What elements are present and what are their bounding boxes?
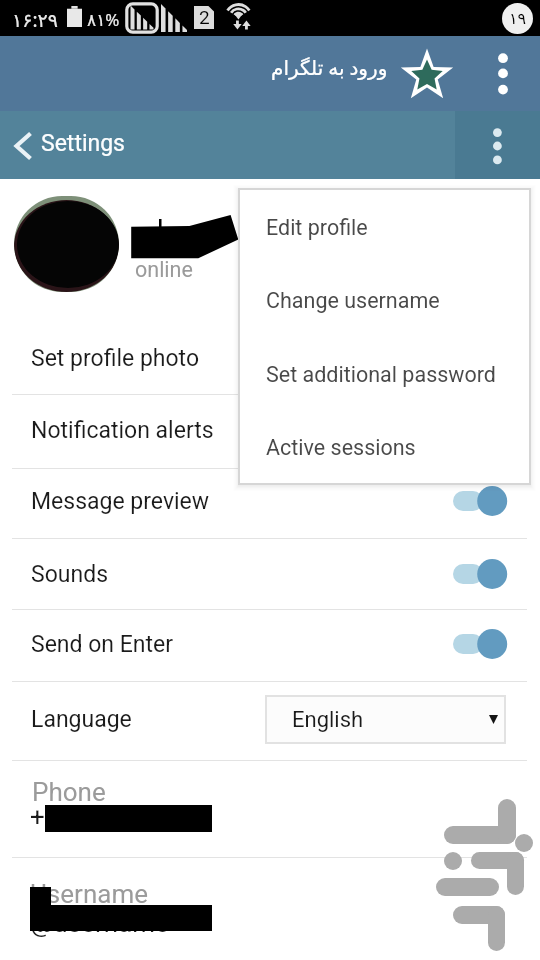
button[interactable]: Toggle [445,481,511,521]
staticText: online [135,257,193,282]
button[interactable]: Notification alerts [0,395,540,466]
staticText: 2 [199,6,210,28]
button[interactable]: Username [0,858,540,958]
staticText: Language [31,706,132,733]
button[interactable]: Settings [0,111,250,179]
button[interactable]: Language [0,684,540,755]
button[interactable]: Sounds [0,539,540,610]
button[interactable]: Set profile photo [0,323,540,394]
staticText: @username [30,908,169,938]
button[interactable]: More options [481,44,525,104]
button[interactable]: English [266,696,505,743]
button[interactable] [14,196,119,292]
button[interactable]: More options [455,111,540,179]
staticText: Set additional password [266,362,496,387]
button[interactable]: Message preview [0,466,540,537]
button[interactable]: Edit profile [239,191,530,264]
button[interactable]: Active sessions [239,411,530,484]
staticText: Set profile photo [31,345,200,372]
staticText: Message preview [31,488,210,515]
button[interactable]: Favorite [398,47,456,103]
staticText: Notification alerts [31,417,214,444]
staticText: ۸۱% [87,8,120,31]
staticText: ۱۶:۲۹ [12,7,58,33]
staticText: Active sessions [266,435,416,460]
staticText: Settings [41,130,125,157]
staticText: English [292,707,364,733]
staticText: Username [30,879,148,909]
button[interactable]: Phone [0,760,540,857]
button[interactable]: Change username [239,264,530,337]
staticText: Sounds [31,561,108,588]
staticText: Phone [32,777,106,807]
button[interactable]: Toggle [445,624,511,664]
staticText: +9 [30,802,60,832]
staticText: ورود به تلگرام [271,56,388,79]
staticText: ۱۹ [509,9,527,28]
staticText: Send on Enter [31,631,174,658]
staticText: Edit profile [266,215,368,240]
button[interactable]: Toggle [445,554,511,594]
button[interactable]: Set additional password [239,338,530,411]
button[interactable]: Send on Enter [0,609,540,680]
staticText: Change username [266,288,440,313]
